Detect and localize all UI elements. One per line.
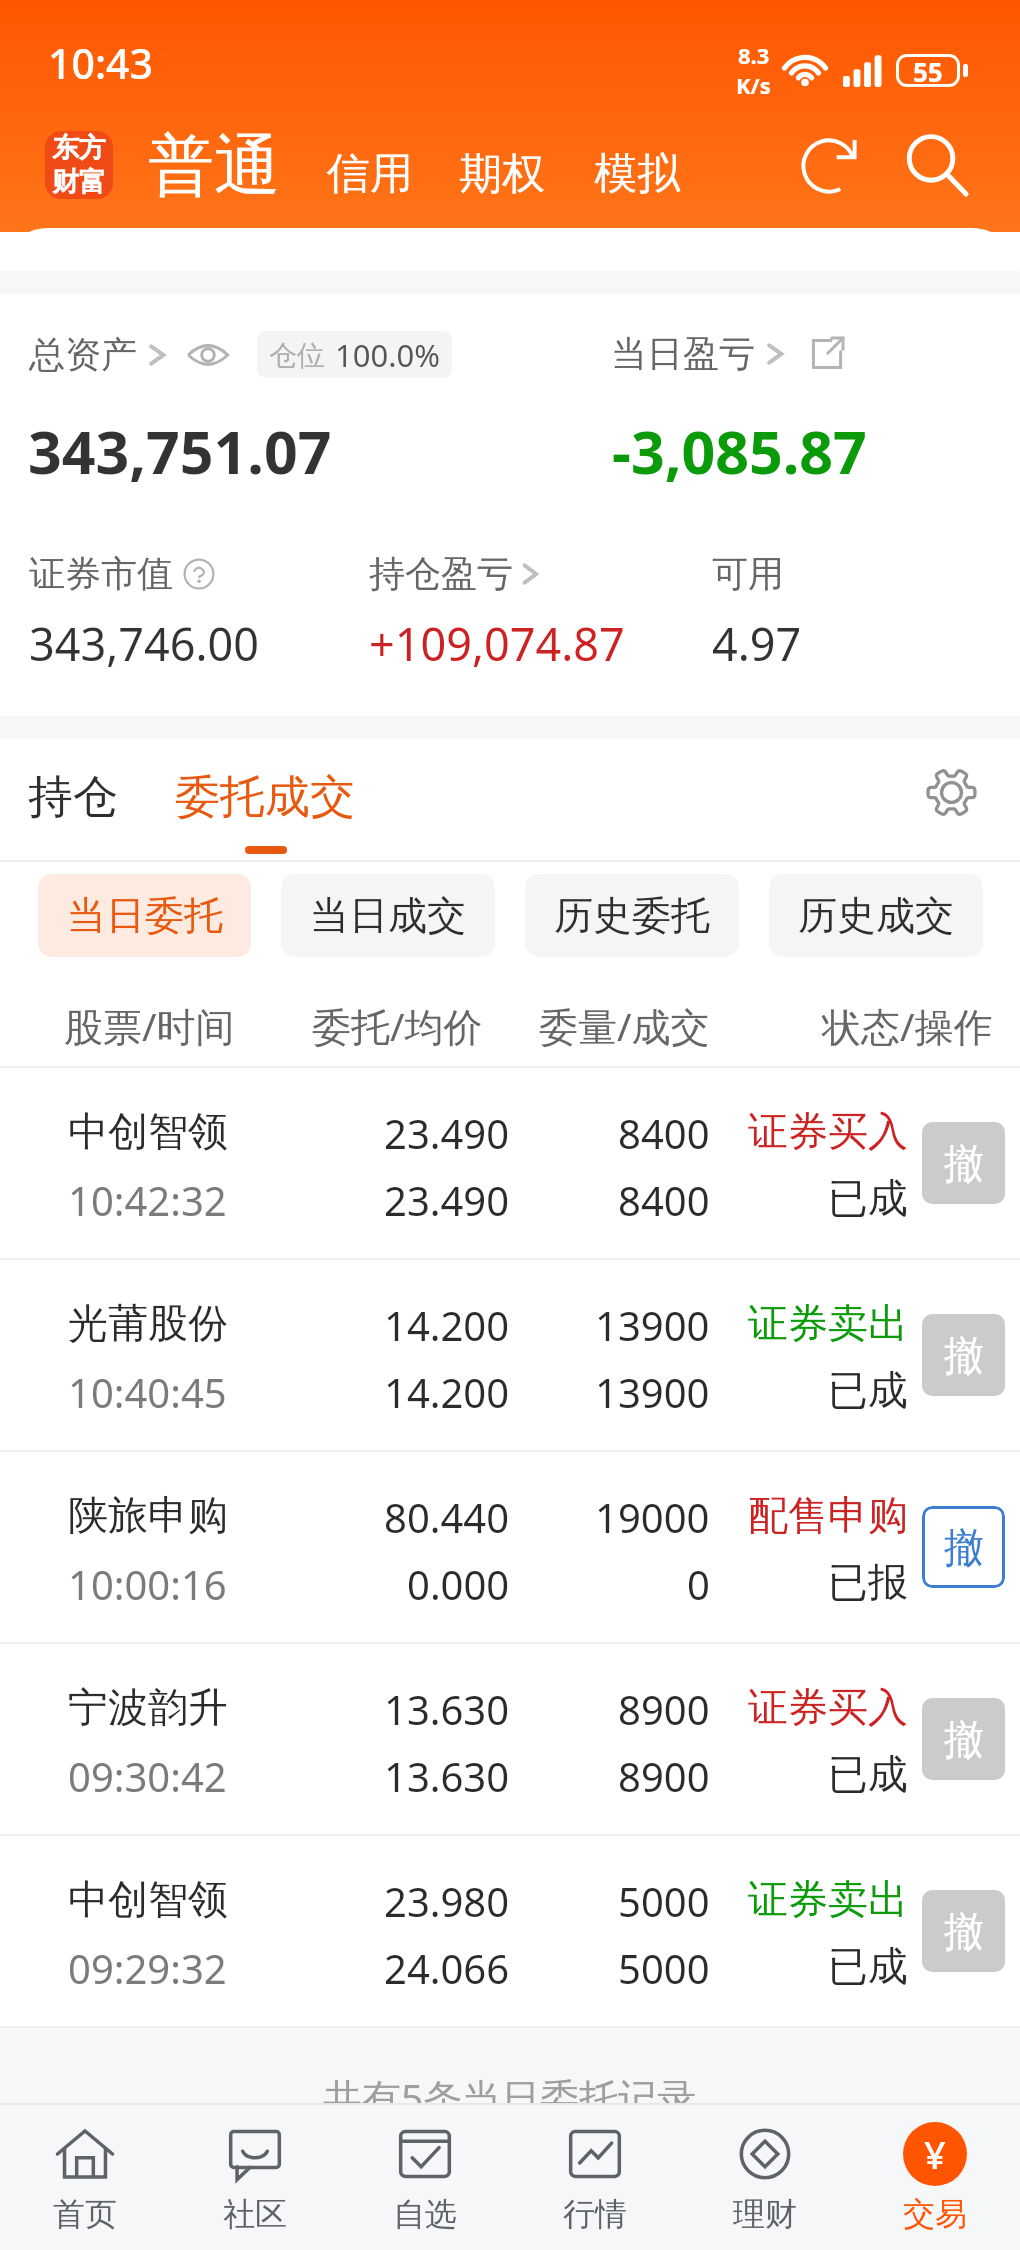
staticText: 财富 xyxy=(52,165,106,199)
button[interactable]: 自选 xyxy=(340,2105,510,2250)
button[interactable]: 社区 xyxy=(170,2105,340,2250)
button[interactable]: 光莆股份 xyxy=(0,1260,1020,1452)
button[interactable]: 委托成交 xyxy=(175,769,355,826)
staticText: 10:40:45 xyxy=(68,1365,227,1419)
staticText: 总资产 xyxy=(29,332,137,377)
staticText: 历史成交 xyxy=(798,891,954,940)
button[interactable]: Toggle balance visibility xyxy=(187,340,229,370)
staticText: 首页 xyxy=(53,2194,117,2234)
button[interactable]: East Money xyxy=(45,131,113,199)
button[interactable]: ¥ xyxy=(850,2105,1020,2250)
button[interactable]: Open detail xyxy=(807,334,847,374)
button[interactable]: 宁波韵升 xyxy=(0,1644,1020,1836)
button[interactable]: 首页 xyxy=(0,2105,170,2250)
staticText: 中创智领 xyxy=(68,1106,228,1156)
staticText: 委托成交 xyxy=(175,769,355,826)
staticText: -3,085.87 xyxy=(612,411,867,491)
staticText: 持仓 xyxy=(28,769,118,826)
button[interactable]: Search xyxy=(894,122,980,208)
staticText: 证券买入 xyxy=(748,1106,908,1156)
staticText: 撤 xyxy=(944,1138,984,1188)
button[interactable]: 撤 xyxy=(922,1506,1005,1588)
staticText: 已成 xyxy=(828,1365,908,1415)
button[interactable]: 信用 xyxy=(327,147,413,201)
staticText: 5000 xyxy=(618,1874,710,1928)
staticText: 23.980 xyxy=(384,1874,510,1928)
button[interactable]: 仓位 xyxy=(257,331,452,378)
staticText: 社区 xyxy=(223,2194,287,2234)
button[interactable]: 撤 xyxy=(922,1122,1005,1204)
staticText: 陕旅申购 xyxy=(68,1490,228,1540)
button[interactable]: Refresh xyxy=(786,123,872,209)
staticText: 撤 xyxy=(944,1714,984,1764)
button[interactable]: 模拟 xyxy=(594,147,680,201)
staticText: 证券卖出 xyxy=(748,1874,908,1924)
staticText: 当日成交 xyxy=(310,891,466,940)
staticText: 100.0% xyxy=(335,334,440,376)
button[interactable]: 历史委托 xyxy=(525,874,739,957)
staticText: 中创智领 xyxy=(68,1874,228,1924)
button[interactable]: 当日委托 xyxy=(38,874,251,957)
staticText: 09:29:32 xyxy=(68,1941,227,1995)
staticText: 模拟 xyxy=(594,147,680,201)
staticText: 55 xyxy=(913,54,943,87)
staticText: 宁波韵升 xyxy=(68,1682,228,1732)
button[interactable]: 普通 xyxy=(148,124,280,207)
staticText: 23.490 xyxy=(384,1173,510,1227)
staticText: 撤 xyxy=(944,1906,984,1956)
staticText: 10:00:16 xyxy=(68,1557,227,1611)
staticText: 信用 xyxy=(327,147,413,201)
staticText: 配售申购 xyxy=(748,1490,908,1540)
staticText: 历史委托 xyxy=(554,891,710,940)
staticText: 证券卖出 xyxy=(748,1298,908,1348)
staticText: 09:30:42 xyxy=(68,1749,227,1803)
staticText: 理财 xyxy=(733,2194,797,2234)
staticText: 交易 xyxy=(903,2194,967,2234)
staticText: 0.000 xyxy=(407,1557,510,1611)
staticText: 8900 xyxy=(618,1682,710,1736)
staticText: 19000 xyxy=(595,1490,710,1544)
button[interactable]: 中创智领 xyxy=(0,1836,1020,2028)
button[interactable]: 历史成交 xyxy=(769,874,983,957)
staticText: 13900 xyxy=(595,1298,710,1352)
staticText: 14.200 xyxy=(384,1365,510,1419)
staticText: 撤 xyxy=(944,1330,984,1380)
button[interactable]: 行情 xyxy=(510,2105,680,2250)
staticText: 股票/时间 xyxy=(64,999,235,1052)
button[interactable]: 持仓盈亏 xyxy=(369,551,547,596)
button[interactable]: 撤 xyxy=(922,1314,1005,1396)
staticText: +109,074.87 xyxy=(369,613,625,674)
staticText: 仓位 xyxy=(269,338,325,373)
staticText: 80.440 xyxy=(384,1490,510,1544)
staticText: 共有5条当日委托记录 xyxy=(323,2070,697,2123)
staticText: 撤 xyxy=(944,1522,984,1572)
button[interactable]: 撤 xyxy=(922,1890,1005,1972)
staticText: 8.3 xyxy=(738,40,770,70)
button[interactable]: 总资产 xyxy=(29,332,175,377)
staticText: 状态/操作 xyxy=(822,999,993,1052)
button[interactable]: 当日成交 xyxy=(281,874,495,957)
button[interactable]: 期权 xyxy=(459,147,545,201)
staticText: 证券市值 xyxy=(29,551,173,596)
staticText: 0 xyxy=(687,1557,710,1611)
staticText: 23.490 xyxy=(384,1106,510,1160)
staticText: 343,746.00 xyxy=(29,613,260,674)
staticText: 自选 xyxy=(393,2194,457,2234)
button[interactable]: 中创智领 xyxy=(0,1068,1020,1260)
staticText: 证券买入 xyxy=(748,1682,908,1732)
staticText: K/s xyxy=(736,70,771,100)
button[interactable]: 撤 xyxy=(922,1698,1005,1780)
button[interactable]: 理财 xyxy=(680,2105,850,2250)
staticText: 13900 xyxy=(595,1365,710,1419)
staticText: 委量/成交 xyxy=(539,999,710,1052)
button[interactable]: Settings xyxy=(919,760,983,824)
staticText: 持仓盈亏 xyxy=(369,551,513,596)
button[interactable]: 当日盈亏 xyxy=(611,331,793,376)
staticText: 普通 xyxy=(148,124,280,207)
button[interactable]: 陕旅申购 xyxy=(0,1452,1020,1644)
staticText: 14.200 xyxy=(384,1298,510,1352)
staticText: 已报 xyxy=(828,1557,908,1607)
staticText: 可用 xyxy=(712,551,784,596)
staticText: 10:43 xyxy=(48,35,153,91)
button[interactable]: 持仓 xyxy=(28,769,118,826)
